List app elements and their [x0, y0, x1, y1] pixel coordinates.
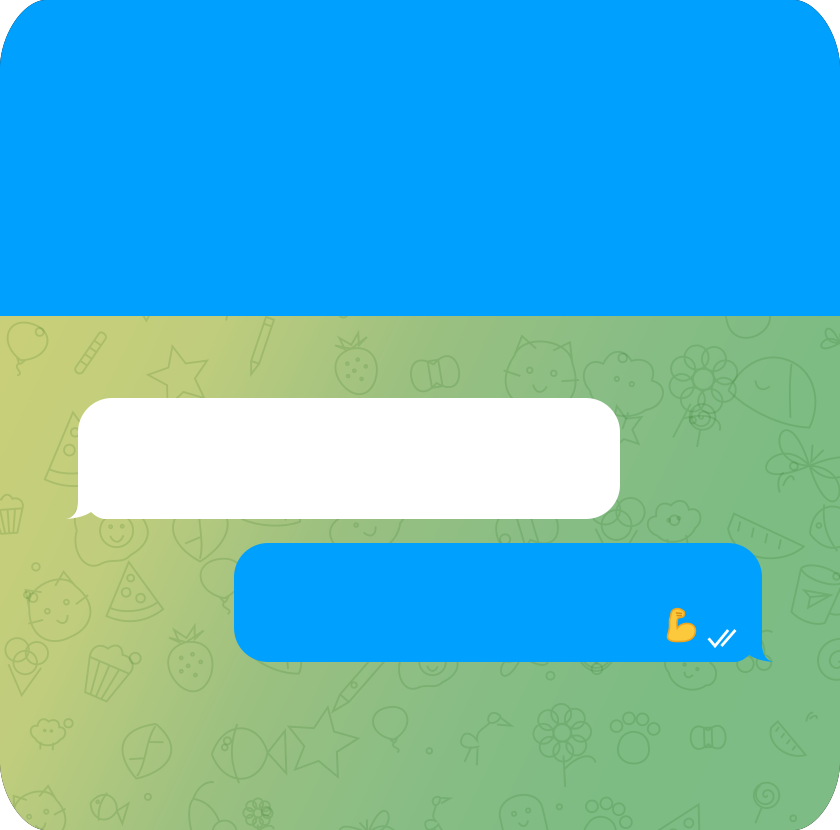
button[interactable]: Received message	[66, 398, 620, 519]
button[interactable]: Sent message, delivered and read	[234, 543, 774, 662]
